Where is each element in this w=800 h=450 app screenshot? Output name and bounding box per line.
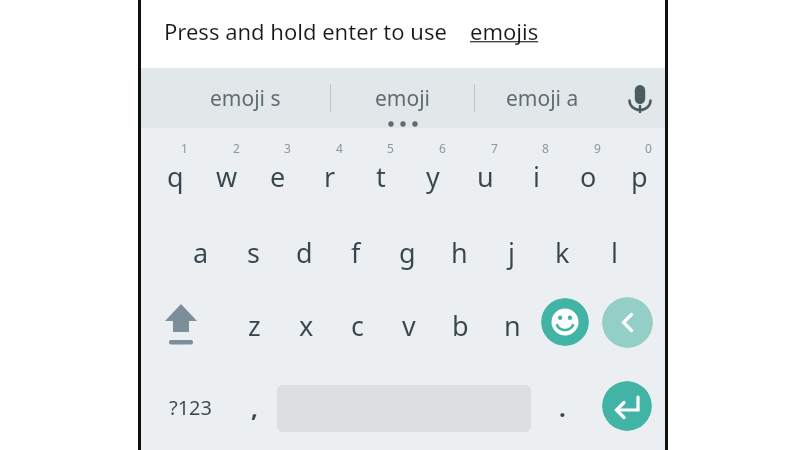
button[interactable] bbox=[511, 133, 561, 211]
button[interactable] bbox=[382, 215, 432, 287]
staticText: emoji a bbox=[506, 84, 579, 113]
staticText: p bbox=[631, 158, 648, 195]
staticText: k bbox=[555, 234, 570, 271]
button[interactable]: Voice input bbox=[617, 76, 663, 122]
button[interactable] bbox=[537, 215, 587, 287]
staticText: d bbox=[296, 234, 313, 271]
staticText: j bbox=[508, 234, 515, 271]
staticText: 2 bbox=[233, 140, 240, 156]
button[interactable] bbox=[305, 133, 355, 211]
staticText: , bbox=[251, 391, 258, 424]
button[interactable] bbox=[228, 215, 278, 287]
button[interactable] bbox=[229, 290, 279, 356]
staticText: h bbox=[451, 234, 468, 271]
button[interactable] bbox=[614, 133, 664, 211]
staticText: 6 bbox=[439, 140, 446, 156]
staticText: 1 bbox=[181, 140, 188, 156]
staticText: 5 bbox=[387, 140, 394, 156]
staticText: o bbox=[580, 158, 597, 195]
button[interactable]: ?123 bbox=[150, 378, 230, 436]
staticText: c bbox=[351, 307, 364, 344]
staticText: r bbox=[324, 158, 336, 195]
button[interactable]: emojis bbox=[470, 6, 560, 56]
button[interactable] bbox=[589, 215, 639, 287]
button[interactable]: Emoji bbox=[541, 298, 589, 346]
button[interactable]: Press and hold enter to use bbox=[164, 6, 464, 56]
button[interactable] bbox=[563, 133, 613, 211]
button[interactable] bbox=[435, 290, 485, 356]
staticText: v bbox=[402, 307, 416, 344]
button[interactable] bbox=[356, 133, 406, 211]
button[interactable] bbox=[408, 133, 458, 211]
staticText: 0 bbox=[645, 140, 652, 156]
staticText: 8 bbox=[542, 140, 549, 156]
staticText: 3 bbox=[284, 140, 291, 156]
button[interactable]: , bbox=[233, 378, 275, 436]
staticText: q bbox=[167, 158, 184, 195]
staticText: . bbox=[559, 391, 566, 424]
button[interactable] bbox=[202, 133, 252, 211]
staticText: 7 bbox=[491, 140, 498, 156]
staticText: x bbox=[299, 307, 314, 344]
staticText: emoji s bbox=[210, 84, 281, 113]
button[interactable] bbox=[384, 290, 434, 356]
staticText: n bbox=[504, 307, 521, 344]
staticText: l bbox=[611, 234, 618, 271]
staticText: g bbox=[399, 234, 416, 271]
button[interactable] bbox=[281, 290, 331, 356]
staticText: a bbox=[193, 234, 209, 271]
staticText: u bbox=[477, 158, 494, 195]
staticText: s bbox=[247, 234, 260, 271]
staticText: z bbox=[248, 307, 261, 344]
staticText: emojis bbox=[470, 16, 539, 46]
button[interactable]: . bbox=[541, 378, 583, 436]
button[interactable]: emoji s bbox=[160, 68, 330, 128]
staticText: 9 bbox=[594, 140, 601, 156]
button[interactable] bbox=[253, 133, 303, 211]
staticText: y bbox=[426, 158, 440, 195]
staticText: Press and hold enter to use bbox=[164, 16, 447, 46]
staticText: e bbox=[270, 158, 286, 195]
button[interactable] bbox=[460, 133, 510, 211]
button[interactable] bbox=[332, 290, 382, 356]
button[interactable]: Back bbox=[602, 297, 653, 348]
staticText: b bbox=[452, 307, 469, 344]
staticText: i bbox=[533, 158, 540, 195]
button[interactable] bbox=[487, 290, 537, 356]
button[interactable]: emoji bbox=[331, 68, 474, 128]
button[interactable] bbox=[150, 133, 200, 211]
staticText: f bbox=[351, 234, 361, 271]
button[interactable] bbox=[176, 215, 226, 287]
button[interactable] bbox=[486, 215, 536, 287]
staticText: ?123 bbox=[169, 394, 212, 421]
button[interactable]: emoji a bbox=[475, 68, 610, 128]
button[interactable]: Shift bbox=[152, 292, 210, 356]
button[interactable] bbox=[434, 215, 484, 287]
staticText: emoji bbox=[375, 84, 431, 113]
staticText: t bbox=[376, 158, 386, 195]
staticText: w bbox=[216, 158, 238, 195]
staticText: 4 bbox=[336, 140, 343, 156]
button[interactable] bbox=[279, 215, 329, 287]
button[interactable]: Enter bbox=[602, 381, 652, 431]
button[interactable] bbox=[331, 215, 381, 287]
